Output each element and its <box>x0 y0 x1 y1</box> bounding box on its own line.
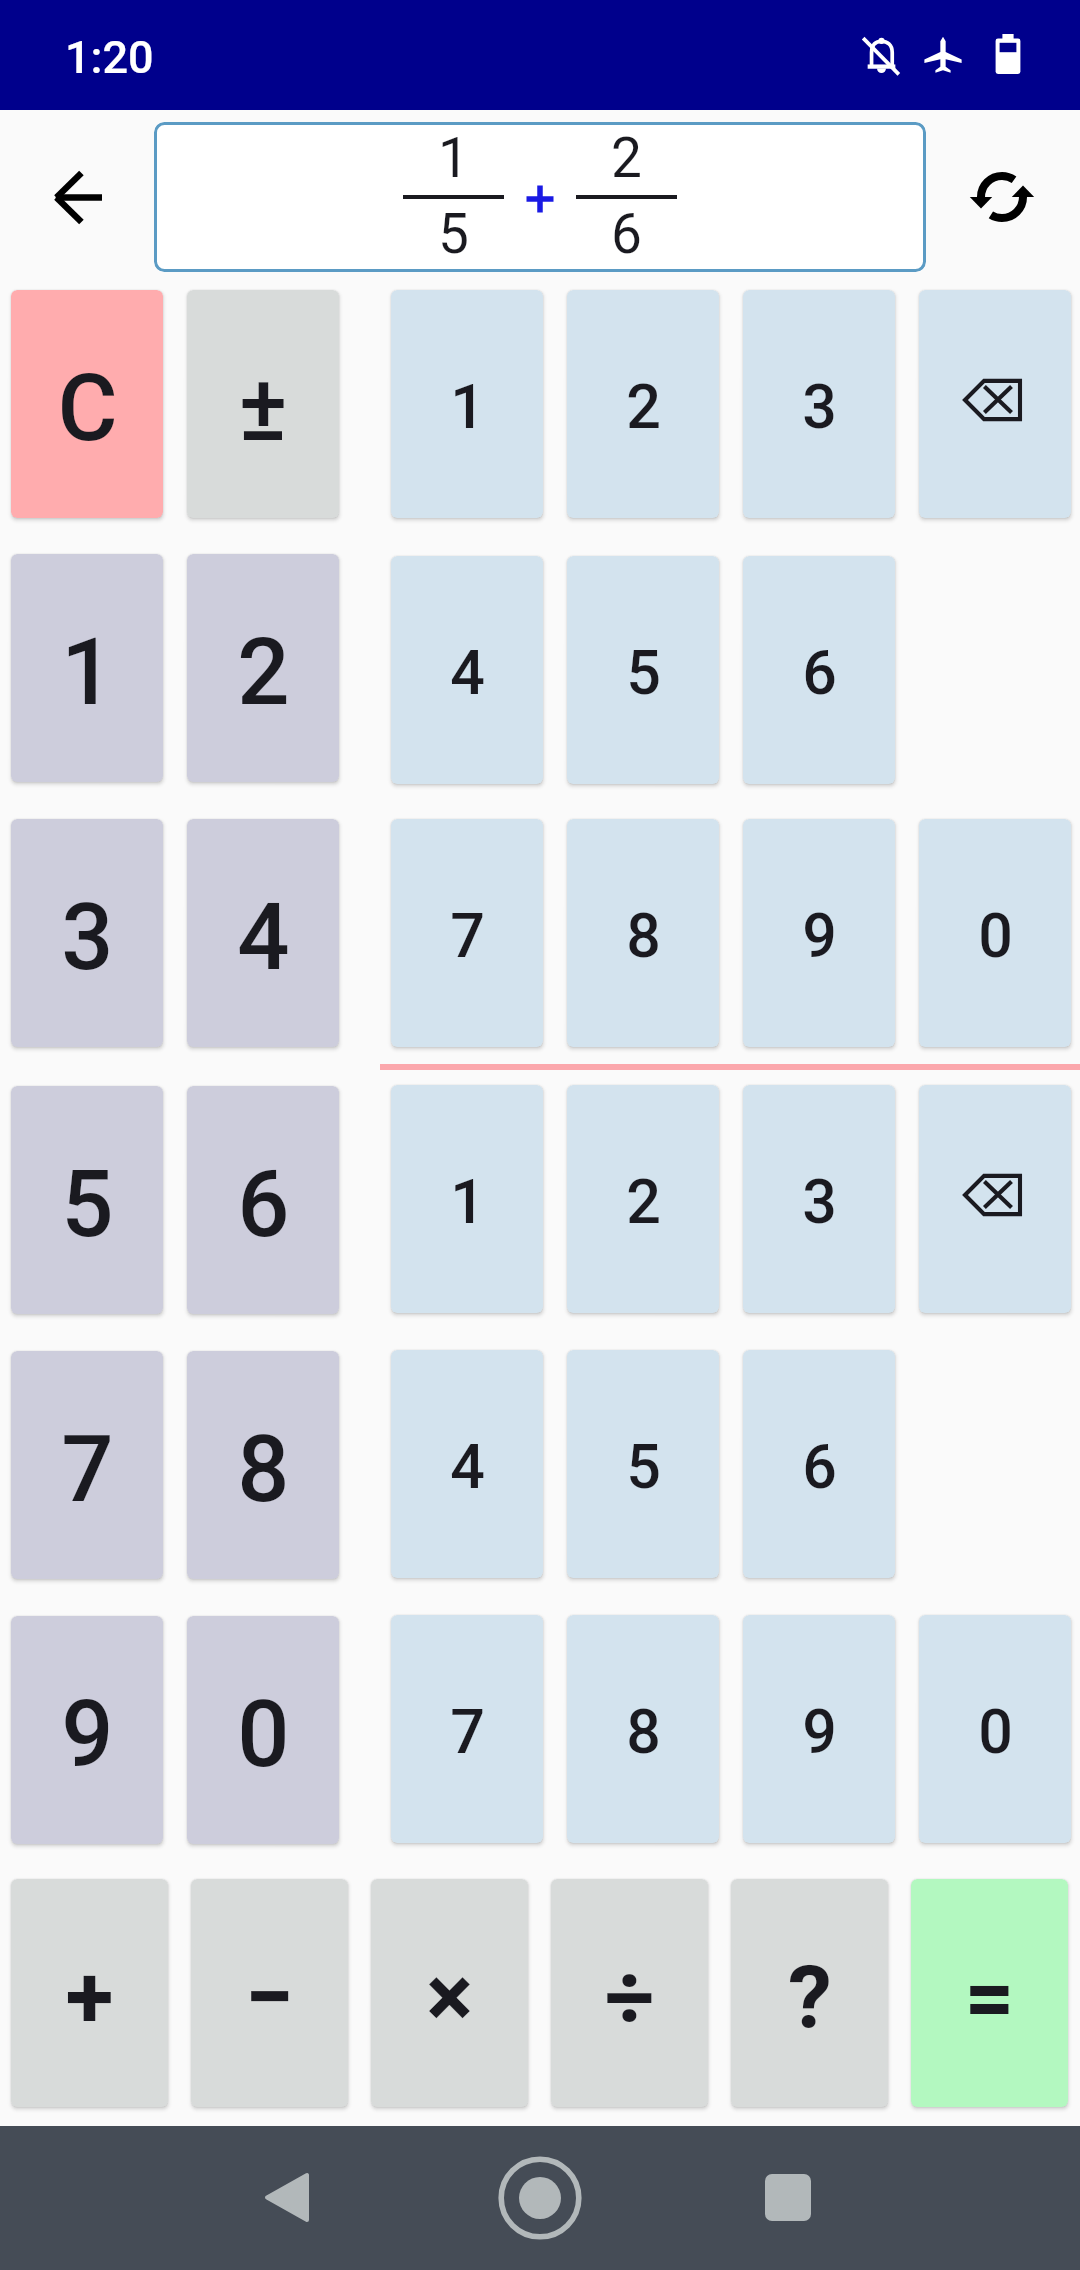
button[interactable]: 3 <box>11 819 163 1047</box>
staticText: 2 <box>626 371 661 442</box>
staticText: 0 <box>237 1681 290 1789</box>
button[interactable]: Backspace <box>919 1085 1071 1313</box>
button[interactable]: 1 <box>391 290 543 518</box>
staticText: 0 <box>978 1696 1013 1767</box>
staticText: ± <box>238 355 288 463</box>
button[interactable]: 9 <box>743 1615 895 1843</box>
staticText: 7 <box>450 900 485 971</box>
staticText: 6 <box>237 1151 290 1259</box>
staticText: × <box>426 1945 473 2048</box>
button[interactable]: 8 <box>567 1615 719 1843</box>
staticText: 7 <box>61 1416 114 1524</box>
button[interactable]: 0 <box>919 819 1071 1047</box>
staticText: 2 <box>611 126 642 190</box>
button[interactable]: 5 <box>567 556 719 784</box>
button[interactable]: 8 <box>187 1351 339 1579</box>
button[interactable]: 7 <box>391 1615 543 1843</box>
button[interactable]: Back <box>251 2161 323 2233</box>
button[interactable]: ? <box>731 1879 888 2107</box>
staticText: 3 <box>802 1166 837 1237</box>
button[interactable]: 4 <box>391 556 543 784</box>
staticText: 6 <box>802 1431 837 1502</box>
staticText: 8 <box>626 1696 661 1767</box>
staticText: 7 <box>450 1696 485 1767</box>
staticText: 5 <box>438 202 469 266</box>
staticText: 6 <box>611 202 642 266</box>
staticText: 1 <box>61 619 114 727</box>
button[interactable]: 6 <box>743 556 895 784</box>
button[interactable]: 8 <box>567 819 719 1047</box>
button[interactable]: 6 <box>187 1086 339 1314</box>
staticText: 8 <box>237 1416 290 1524</box>
button[interactable]: + <box>11 1879 168 2107</box>
button[interactable]: 0 <box>919 1615 1071 1843</box>
button[interactable]: 5 <box>567 1350 719 1578</box>
button[interactable]: Back <box>30 150 124 244</box>
button[interactable]: 1 <box>391 1085 543 1313</box>
button[interactable]: 3 <box>743 1085 895 1313</box>
staticText: 0 <box>978 900 1013 971</box>
button[interactable]: 2 <box>567 1085 719 1313</box>
staticText: 9 <box>802 1696 837 1767</box>
button[interactable]: 2 <box>567 290 719 518</box>
staticText: + <box>65 1945 114 2048</box>
button[interactable]: 4 <box>187 819 339 1047</box>
staticText: 5 <box>626 637 661 708</box>
staticText: C <box>57 355 118 463</box>
staticText: 4 <box>450 637 485 708</box>
button[interactable]: 0 <box>187 1616 339 1844</box>
staticText: 1 <box>450 1166 485 1237</box>
button[interactable]: Swap fractions <box>955 150 1049 244</box>
button[interactable]: 2 <box>187 554 339 782</box>
button[interactable]: ± <box>187 290 339 518</box>
staticText: 8 <box>626 900 661 971</box>
button[interactable]: C <box>11 290 163 518</box>
button[interactable]: Recent apps <box>752 2161 824 2233</box>
button[interactable]: 9 <box>11 1616 163 1844</box>
staticText: 2 <box>237 619 290 727</box>
button[interactable]: 6 <box>743 1350 895 1578</box>
button[interactable]: 7 <box>391 819 543 1047</box>
button[interactable]: ÷ <box>551 1879 708 2107</box>
staticText: 6 <box>802 637 837 708</box>
staticText: 9 <box>802 900 837 971</box>
button[interactable]: = <box>911 1879 1068 2107</box>
staticText: 2 <box>626 1166 661 1237</box>
staticText: 1:20 <box>65 31 154 84</box>
staticText: 5 <box>61 1151 114 1259</box>
staticText: 9 <box>61 1681 114 1789</box>
staticText: ? <box>788 1945 832 2048</box>
staticText: 1 <box>438 126 469 190</box>
staticText: − <box>245 1945 294 2048</box>
button[interactable]: Expression 1/5 + 2/6 <box>154 122 926 272</box>
staticText: 4 <box>237 884 290 992</box>
button[interactable]: × <box>371 1879 528 2107</box>
staticText: 1 <box>450 371 485 442</box>
button[interactable]: 9 <box>743 819 895 1047</box>
button[interactable]: 3 <box>743 290 895 518</box>
button[interactable]: Home <box>500 2158 580 2238</box>
button[interactable]: − <box>191 1879 348 2107</box>
staticText: 4 <box>450 1431 485 1502</box>
button[interactable]: 7 <box>11 1351 163 1579</box>
button[interactable]: 1 <box>11 554 163 782</box>
staticText: 5 <box>626 1431 661 1502</box>
staticText: = <box>964 1945 1015 2048</box>
staticText: 3 <box>61 884 114 992</box>
staticText: ÷ <box>604 1945 655 2048</box>
button[interactable]: Backspace <box>919 290 1071 518</box>
staticText: 3 <box>802 371 837 442</box>
button[interactable]: 5 <box>11 1086 163 1314</box>
button[interactable]: 4 <box>391 1350 543 1578</box>
